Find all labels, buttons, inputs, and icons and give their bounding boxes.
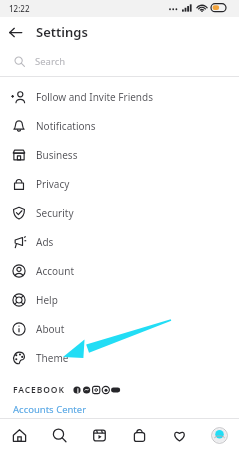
staticText: Search: [35, 55, 66, 68]
staticText: Settings: [36, 23, 88, 41]
button[interactable]: Theme: [0, 343, 239, 372]
button[interactable]: Account: [0, 256, 239, 285]
button[interactable]: Security: [0, 198, 239, 227]
button[interactable]: Notifications: [0, 111, 239, 140]
button[interactable]: Search: [0, 47, 239, 76]
button[interactable]: Activity: [159, 419, 199, 452]
button[interactable]: Shop: [119, 419, 159, 452]
button[interactable]: Back: [0, 17, 30, 47]
button[interactable]: Help: [0, 285, 239, 314]
staticText: Notifications: [36, 119, 96, 133]
staticText: Ads: [36, 235, 54, 249]
button[interactable]: Profile: [199, 419, 239, 452]
button[interactable]: Follow and Invite Friends: [0, 82, 239, 111]
staticText: Theme: [36, 351, 69, 365]
button[interactable]: Reels: [79, 419, 119, 452]
button[interactable]: Search: [39, 419, 79, 452]
button[interactable]: Accounts Center: [13, 403, 87, 416]
staticText: Security: [36, 206, 74, 220]
button[interactable]: Business: [0, 140, 239, 169]
button[interactable]: Privacy: [0, 169, 239, 198]
button[interactable]: Ads: [0, 227, 239, 256]
staticText: About: [36, 322, 65, 336]
staticText: FACEBOOK: [13, 384, 65, 396]
staticText: Business: [36, 148, 78, 162]
staticText: Privacy: [36, 177, 70, 191]
staticText: Help: [36, 293, 58, 307]
button[interactable]: About: [0, 314, 239, 343]
staticText: 12:22: [9, 3, 30, 14]
button[interactable]: Home: [0, 419, 39, 452]
staticText: Follow and Invite Friends: [36, 90, 153, 104]
staticText: Account: [36, 264, 75, 278]
